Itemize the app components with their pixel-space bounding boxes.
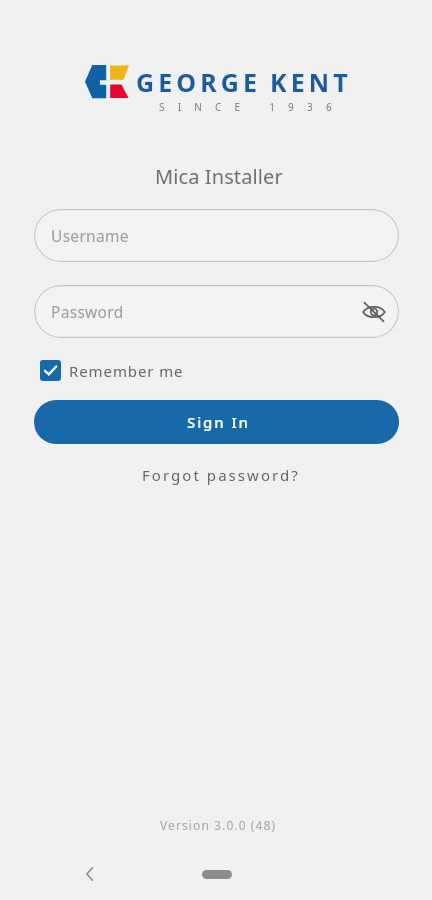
button[interactable]: Forgot password?	[136, 462, 306, 488]
button[interactable]: Sign In	[34, 400, 399, 444]
button[interactable]: Back	[77, 862, 101, 886]
button[interactable]: Password	[34, 285, 399, 338]
staticText: Version 3.0.0 (48)	[160, 817, 277, 833]
staticText: Username	[51, 225, 129, 246]
staticText: SINCE 1936	[159, 100, 345, 114]
staticText: KENT	[270, 65, 352, 99]
button[interactable]: Show password	[356, 294, 392, 330]
staticText: Sign In	[187, 412, 250, 432]
staticText: Forgot password?	[142, 465, 300, 485]
button[interactable]: Remember me	[40, 360, 184, 381]
staticText: Password	[51, 301, 124, 322]
staticText: Mica Installer	[155, 163, 283, 190]
button[interactable]: Username	[34, 209, 399, 262]
staticText: GEORGE	[136, 65, 261, 99]
staticText: Remember me	[69, 361, 184, 381]
